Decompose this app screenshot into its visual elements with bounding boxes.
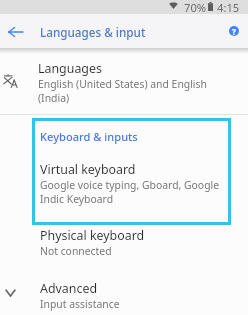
staticText: Keyboard & inputs — [40, 129, 138, 144]
staticText: Input assistance — [40, 297, 120, 311]
button[interactable]: Help — [222, 19, 246, 43]
staticText: Not connected — [40, 244, 112, 258]
staticText: Google voice typing, Gboard, Google Indi… — [40, 178, 220, 206]
staticText: Languages — [38, 60, 102, 77]
staticText: Physical keyboard — [40, 227, 145, 244]
staticText: 70% — [184, 0, 207, 15]
button[interactable]: Languages — [0, 52, 248, 110]
button[interactable]: Advanced — [0, 274, 248, 315]
staticText: English (United States) and English (Ind… — [38, 77, 207, 105]
button[interactable]: Physical keyboard — [0, 221, 248, 261]
staticText: Advanced — [40, 280, 97, 297]
staticText: 4:15 — [217, 0, 240, 15]
staticText: ? — [232, 26, 236, 36]
staticText: Virtual keyboard — [40, 161, 136, 178]
staticText: Languages & input — [40, 24, 146, 40]
button[interactable]: Virtual keyboard — [0, 155, 248, 207]
button[interactable]: Navigate up — [3, 20, 27, 44]
